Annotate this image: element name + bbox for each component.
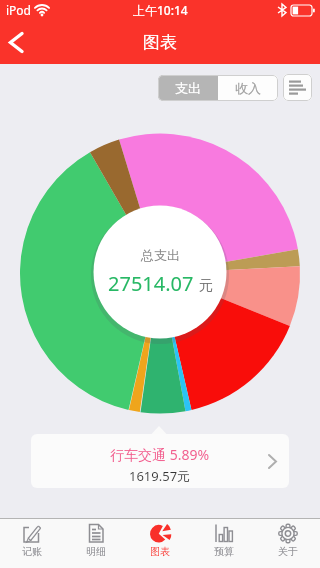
- staticText: 关于: [278, 545, 298, 558]
- button[interactable]: 支出: [158, 75, 218, 101]
- button[interactable]: 行车交通 5.89%: [31, 434, 289, 488]
- button[interactable]: 收入: [218, 75, 278, 101]
- button[interactable]: 图表: [128, 519, 192, 568]
- staticText: 27514.07: [108, 270, 194, 297]
- staticText: 收入: [235, 80, 261, 96]
- button[interactable]: [283, 74, 312, 101]
- staticText: 图表: [150, 545, 170, 558]
- button[interactable]: 明细: [64, 519, 128, 568]
- button[interactable]: [0, 20, 44, 64]
- staticText: 上午10:14: [133, 2, 188, 18]
- staticText: 行车交通 5.89%: [110, 445, 210, 464]
- staticText: 总支出: [141, 247, 180, 263]
- button[interactable]: 关于: [256, 519, 320, 568]
- button[interactable]: 记账: [0, 519, 64, 568]
- staticText: 图表: [143, 32, 177, 53]
- staticText: 支出: [175, 80, 201, 96]
- staticText: 预算: [214, 545, 234, 558]
- staticText: 1619.57元: [129, 467, 191, 485]
- staticText: iPod: [6, 2, 31, 18]
- button[interactable]: 预算: [192, 519, 256, 568]
- staticText: 记账: [22, 545, 42, 558]
- staticText: 明细: [86, 545, 106, 558]
- staticText: 元: [199, 277, 213, 295]
